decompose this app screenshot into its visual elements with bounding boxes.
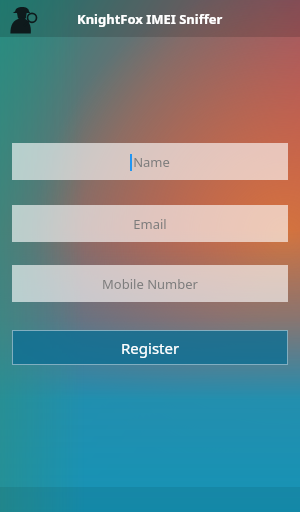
staticText: Mobile Number — [102, 275, 198, 293]
staticText: Register — [121, 338, 180, 358]
button[interactable]: Register — [12, 330, 288, 365]
button[interactable]: Email — [12, 205, 288, 242]
button[interactable]: Mobile Number — [12, 265, 288, 302]
other: App logo — [8, 4, 38, 34]
button[interactable]: Name — [12, 143, 288, 180]
staticText: KnightFox IMEI Sniffer — [77, 10, 223, 28]
staticText: Email — [133, 215, 167, 233]
staticText: Name — [133, 153, 170, 171]
